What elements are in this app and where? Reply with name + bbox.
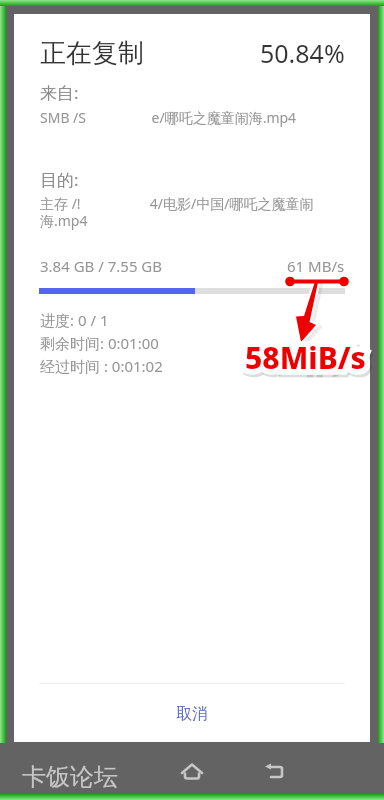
- staticText: 取消: [176, 704, 208, 724]
- staticText: 卡饭论坛: [22, 762, 118, 792]
- staticText: 进度: 0 / 1: [40, 310, 109, 330]
- staticText: 3.84 GB / 7.55 GB: [40, 256, 163, 276]
- button[interactable]: Back: [254, 752, 294, 792]
- button[interactable]: Home: [172, 752, 212, 792]
- staticText: 经过时间 : 0:01:02: [40, 356, 163, 376]
- staticText: SMB /S e/哪吒之魔童闹海.mp4: [40, 108, 297, 127]
- staticText: 58MiB/s: [245, 337, 366, 378]
- staticText: 剩余时间: 0:01:00: [40, 333, 159, 353]
- staticText: 61 MB/s: [287, 256, 345, 276]
- staticText: 58MiB/s: [247, 340, 368, 381]
- staticText: 58MiB/s: [245, 337, 366, 378]
- staticText: 50.84%: [260, 36, 345, 70]
- staticText: 正在复制: [40, 37, 144, 70]
- staticText: 来自:: [40, 81, 79, 104]
- staticText: 目的:: [40, 168, 79, 191]
- button[interactable]: 取消: [14, 692, 370, 736]
- staticText: 主存 /! 4/电影/中国/哪吒之魔童闹海.mp4: [40, 194, 330, 230]
